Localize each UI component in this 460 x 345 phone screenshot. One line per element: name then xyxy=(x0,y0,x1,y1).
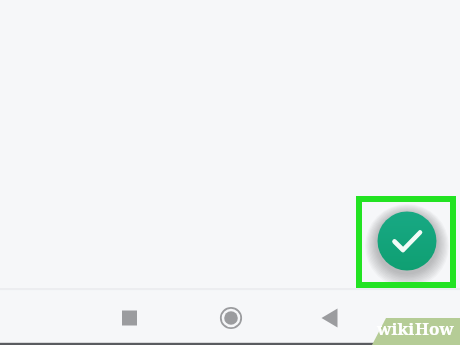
staticText: wiki xyxy=(377,317,415,340)
button[interactable]: Back xyxy=(306,294,355,343)
button[interactable]: Home xyxy=(207,294,256,343)
button[interactable]: Recent apps xyxy=(105,294,154,343)
button[interactable]: Confirm xyxy=(378,212,437,271)
staticText: How xyxy=(415,317,454,340)
